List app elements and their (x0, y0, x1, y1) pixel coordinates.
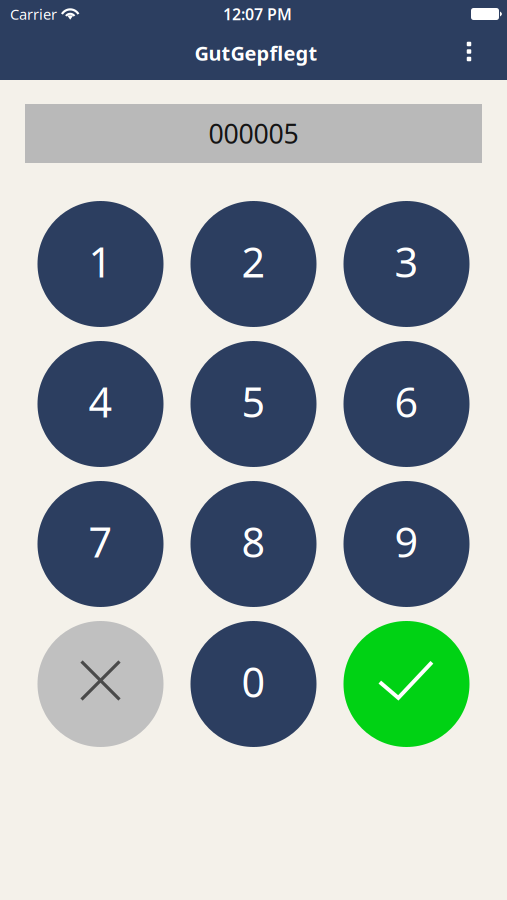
button[interactable]: Confirm (343, 621, 469, 747)
button[interactable]: Clear (37, 621, 163, 747)
button[interactable]: 1 (37, 201, 163, 327)
staticText: 3 (394, 234, 418, 289)
staticText: 8 (241, 514, 265, 569)
button[interactable]: 4 (37, 341, 163, 467)
staticText: 6 (394, 374, 418, 429)
staticText: Carrier (10, 4, 57, 24)
staticText: 4 (88, 374, 112, 429)
staticText: 2 (241, 234, 265, 289)
button[interactable]: 6 (343, 341, 469, 467)
staticText: 9 (394, 514, 418, 569)
button[interactable]: 3 (343, 201, 469, 327)
button[interactable]: More options (447, 31, 491, 77)
button[interactable]: 7 (37, 481, 163, 607)
staticText: GutGepflegt (194, 40, 317, 66)
staticText: 7 (88, 514, 112, 569)
staticText: 0 (241, 654, 265, 709)
button[interactable]: 2 (190, 201, 316, 327)
button[interactable]: 9 (343, 481, 469, 607)
button[interactable]: 5 (190, 341, 316, 467)
staticText: 000005 (208, 116, 298, 151)
staticText: 1 (88, 234, 112, 289)
button[interactable]: 8 (190, 481, 316, 607)
staticText: 12:07 PM (223, 3, 292, 25)
staticText: 5 (241, 374, 265, 429)
button[interactable]: 0 (190, 621, 316, 747)
